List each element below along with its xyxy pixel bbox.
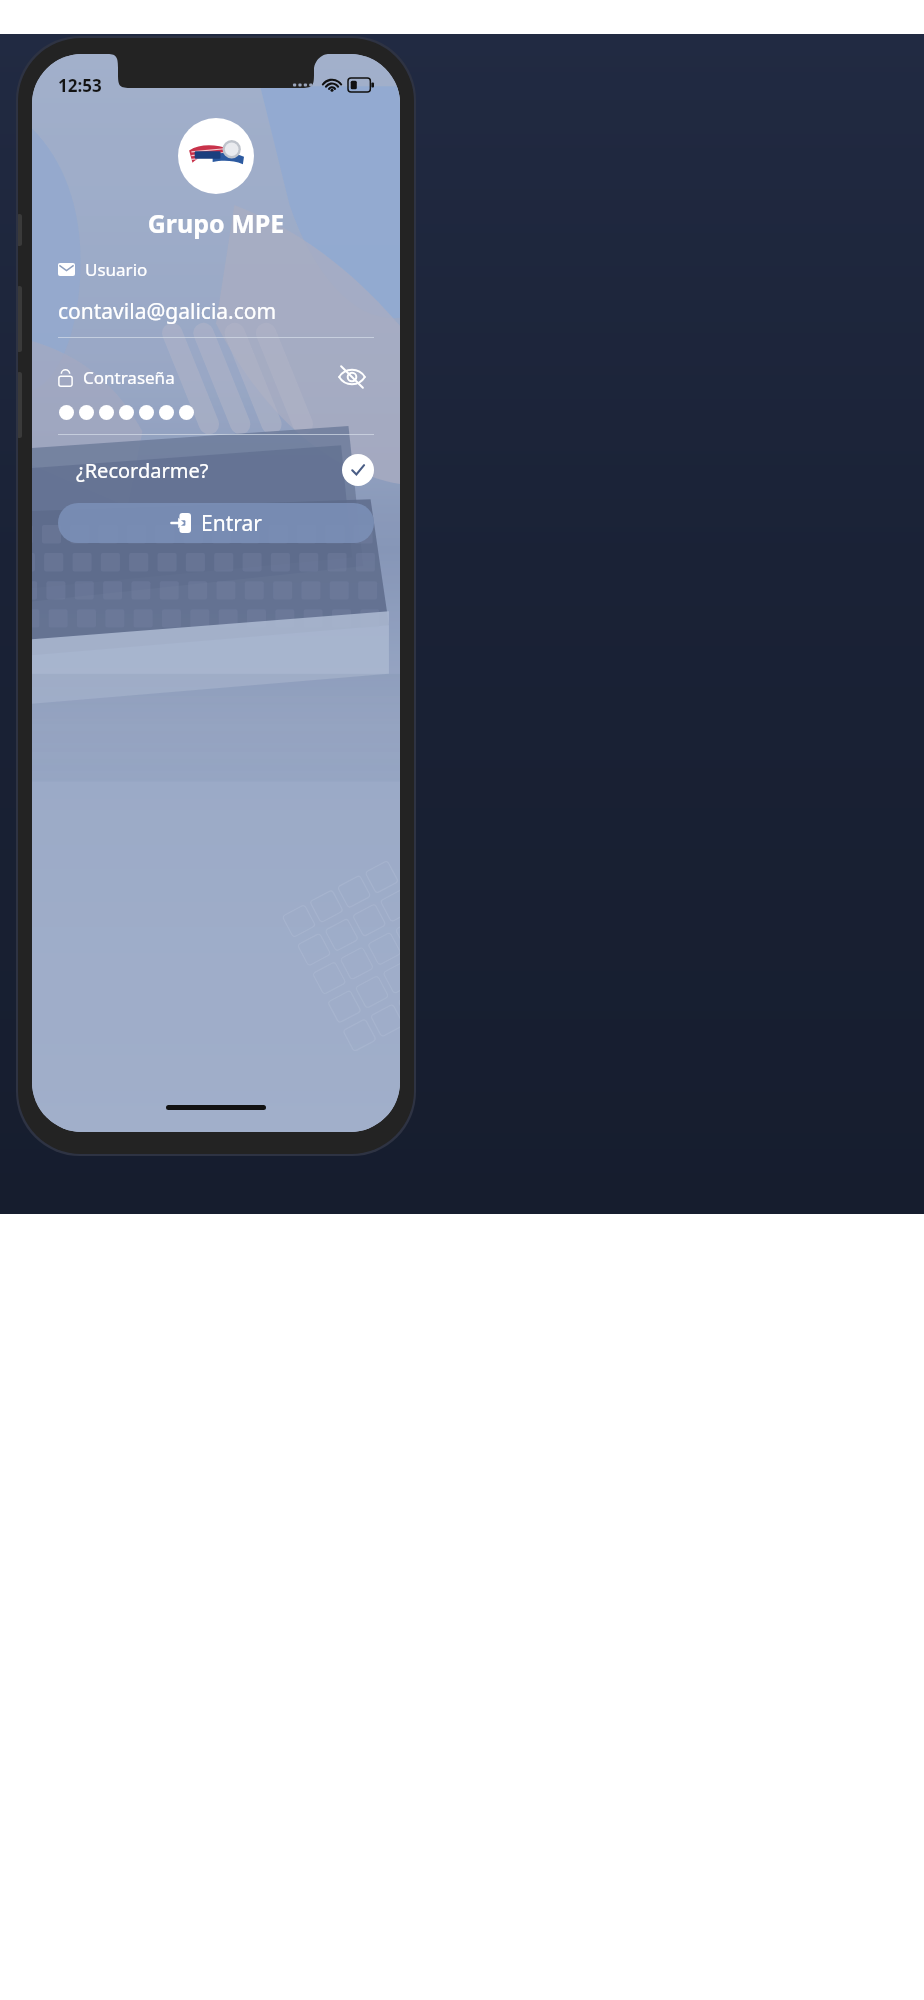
staticText: ¿Recordarme? xyxy=(76,457,209,484)
staticText: Entrar xyxy=(201,509,262,538)
button[interactable]: Entrar xyxy=(58,503,374,543)
button[interactable]: Usuario xyxy=(58,258,374,338)
staticText: Usuario xyxy=(85,258,148,281)
staticText: 12:53 xyxy=(58,74,102,97)
staticText: contavila@galicia.com xyxy=(58,297,277,326)
staticText: Contraseña xyxy=(83,366,175,389)
staticText: Grupo MPE xyxy=(58,206,374,240)
button[interactable]: Contraseña xyxy=(58,366,330,389)
button[interactable]: ¿Recordarme? xyxy=(58,445,374,495)
button[interactable]: Mostrar contraseña xyxy=(330,355,374,399)
